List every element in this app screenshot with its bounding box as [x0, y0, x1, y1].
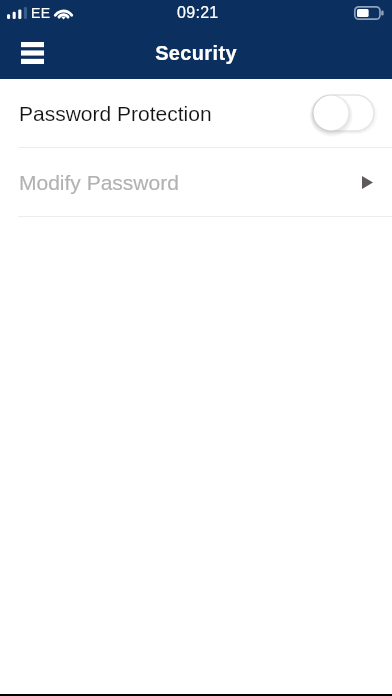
button[interactable]: Password Protection, off: [313, 95, 374, 131]
staticText: EE: [31, 5, 51, 21]
staticText: Modify Password: [19, 171, 179, 194]
button[interactable]: Modify Password: [0, 148, 392, 216]
button[interactable]: Open navigation menu: [12, 33, 52, 73]
staticText: 09:21: [177, 4, 219, 22]
button[interactable]: Password Protection: [0, 79, 392, 147]
staticText: Security: [155, 42, 237, 64]
staticText: Password Protection: [19, 102, 212, 125]
